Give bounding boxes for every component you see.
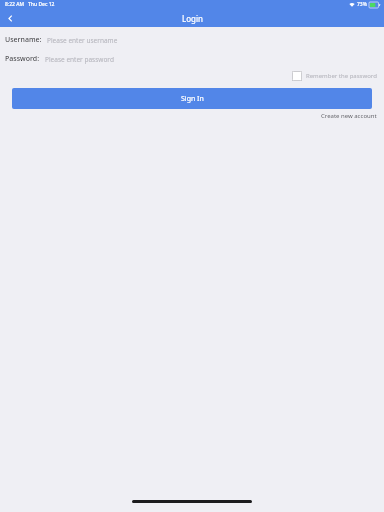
button[interactable]: Username: (0, 33, 384, 47)
button[interactable]: Create new account (319, 109, 379, 123)
button[interactable]: Remember the password (290, 68, 379, 84)
staticText: Create new account (321, 112, 377, 120)
staticText: Username: (5, 35, 42, 45)
staticText: 8:22 AM Thu Dec 12 (5, 1, 55, 8)
staticText: Sign In (181, 94, 204, 104)
staticText: Remember the password (306, 72, 377, 80)
button[interactable]: Sign In (12, 88, 372, 109)
staticText: Please enter password (45, 55, 114, 64)
staticText: Login (182, 13, 203, 24)
button[interactable]: Password: (0, 52, 384, 66)
staticText: 73% (357, 1, 367, 8)
staticText: Password: (5, 54, 40, 64)
staticText: Please enter username (47, 36, 118, 45)
button[interactable]: Back (0, 9, 20, 27)
